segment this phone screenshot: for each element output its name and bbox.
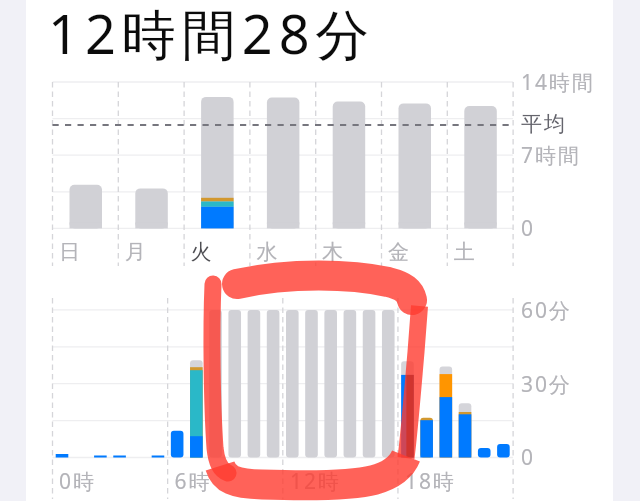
button[interactable] (0, 0, 640, 501)
